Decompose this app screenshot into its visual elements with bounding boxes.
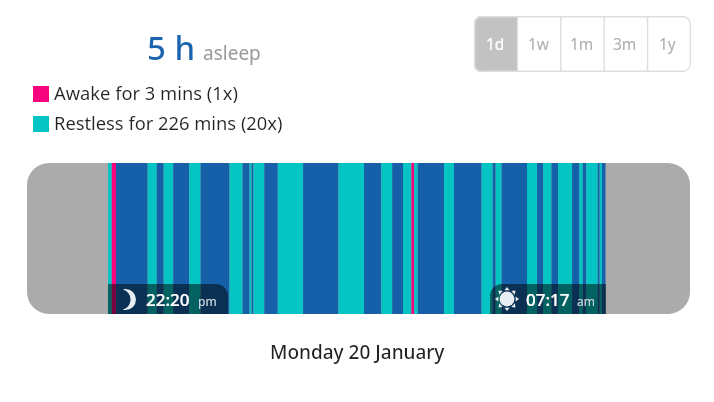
other: Wake up time <box>495 287 519 311</box>
staticText: 22:20 <box>146 288 190 311</box>
button[interactable]: 1w <box>517 16 560 72</box>
staticText: Awake for 3 mins (1x) <box>54 80 238 105</box>
staticText: 3m <box>613 33 637 54</box>
staticText: 07:17 <box>526 288 570 311</box>
button[interactable]: Bedtime <box>27 163 690 314</box>
button[interactable]: 1d <box>474 16 517 72</box>
button[interactable]: 1m <box>560 16 603 72</box>
other: Bedtime <box>121 289 136 310</box>
button[interactable]: 1y <box>646 16 689 72</box>
staticText: Restless for 226 mins (20x) <box>54 110 283 135</box>
staticText: pm <box>198 293 217 309</box>
staticText: 5 h <box>147 25 196 70</box>
button[interactable]: 3m <box>603 16 646 72</box>
staticText: 1y <box>659 33 676 54</box>
staticText: 1d <box>486 33 505 54</box>
staticText: am <box>577 293 595 309</box>
staticText: asleep <box>203 40 261 66</box>
staticText: 1w <box>528 33 550 54</box>
staticText: Monday 20 January <box>270 339 445 365</box>
button[interactable]: Bedtime <box>108 284 228 314</box>
staticText: 1m <box>570 33 594 54</box>
button[interactable]: Wake up time <box>490 284 606 314</box>
